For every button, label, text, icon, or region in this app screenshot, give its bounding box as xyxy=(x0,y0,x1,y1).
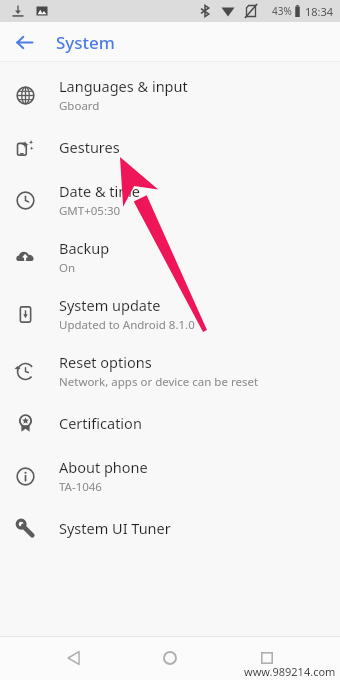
button[interactable]: Certification xyxy=(0,399,340,447)
staticText: Backup xyxy=(59,238,110,258)
button[interactable]: Gestures xyxy=(0,123,340,171)
button[interactable]: System UI Tuner xyxy=(0,504,340,552)
staticText: Languages & input xyxy=(59,76,188,96)
button[interactable]: Back xyxy=(8,26,40,58)
button[interactable]: Recent apps xyxy=(244,636,290,680)
staticText: Reset options xyxy=(59,352,152,372)
staticText: System UI Tuner xyxy=(59,518,171,538)
staticText: Network, apps or device can be reset xyxy=(59,374,259,390)
staticText: Certification xyxy=(59,413,142,433)
staticText: Updated to Android 8.1.0 xyxy=(59,317,195,333)
staticText: About phone xyxy=(59,457,148,477)
button[interactable]: Date & time xyxy=(0,171,340,228)
staticText: Gboard xyxy=(59,98,100,114)
button[interactable]: About phone xyxy=(0,447,340,504)
button[interactable]: Home xyxy=(147,636,193,680)
staticText: 18:34 xyxy=(305,4,334,19)
staticText: System xyxy=(56,31,115,54)
staticText: 43% xyxy=(272,4,292,18)
button[interactable]: Reset options xyxy=(0,342,340,399)
staticText: GMT+05:30 xyxy=(59,203,121,219)
button[interactable]: Back xyxy=(51,636,97,680)
button[interactable]: Backup xyxy=(0,228,340,285)
staticText: Gestures xyxy=(59,137,120,157)
staticText: Date & time xyxy=(59,181,140,201)
staticText: On xyxy=(59,260,76,276)
button[interactable]: Languages & input xyxy=(0,66,340,123)
button[interactable]: System update xyxy=(0,285,340,342)
staticText: www.989214.com xyxy=(244,664,336,679)
staticText: System update xyxy=(59,295,161,315)
staticText: TA-1046 xyxy=(59,479,102,495)
